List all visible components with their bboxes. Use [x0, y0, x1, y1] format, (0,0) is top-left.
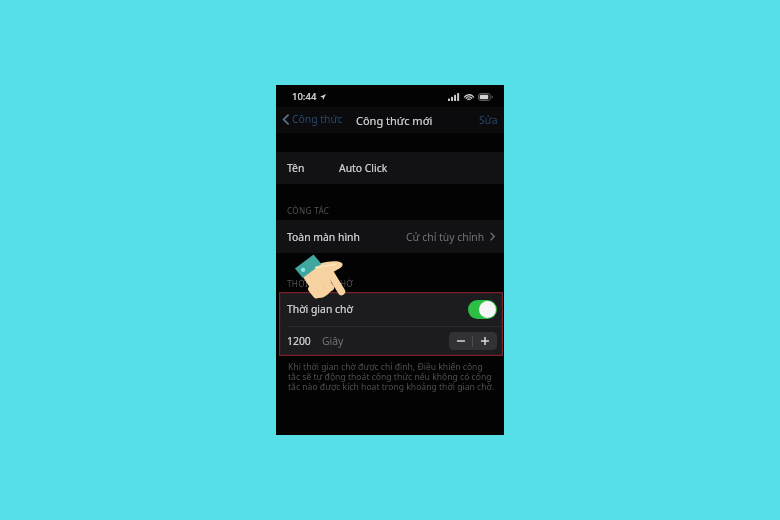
button[interactable]: Thời gian chờ: [279, 292, 503, 326]
button[interactable]: Tăng: [473, 332, 497, 350]
staticText: Thời gian chờ: [287, 302, 353, 316]
staticText: Auto Click: [339, 161, 388, 175]
staticText: Giây: [322, 334, 344, 348]
button[interactable]: Tên: [276, 152, 504, 184]
staticText: Công thức mới: [356, 113, 433, 128]
staticText: Cử chỉ tùy chỉnh: [406, 230, 485, 244]
staticText: Khi thời gian chờ được chỉ định, Điều kh…: [288, 361, 495, 393]
staticText: Công thức: [292, 112, 343, 126]
staticText: 1200: [287, 334, 311, 348]
staticText: Toàn màn hình: [287, 230, 360, 244]
button[interactable]: Sửa: [473, 108, 504, 132]
staticText: THỜI GIAN CHỜ: [287, 278, 353, 289]
button[interactable]: Toàn màn hình: [276, 220, 504, 253]
staticText: Tên: [287, 161, 305, 175]
button[interactable]: Bật thời gian chờ: [468, 300, 497, 319]
staticText: 10:44: [292, 90, 317, 103]
staticText: CÔNG TÁC: [287, 205, 330, 216]
button[interactable]: Giảm: [449, 332, 472, 350]
staticText: Sửa: [479, 113, 498, 127]
button[interactable]: 1200: [279, 326, 503, 356]
button[interactable]: Công thức: [281, 107, 345, 131]
